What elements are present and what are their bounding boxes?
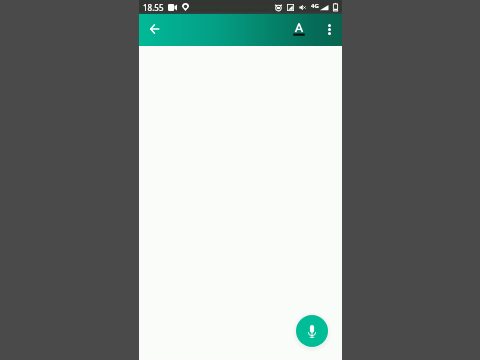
button[interactable]: Back — [139, 14, 169, 46]
button[interactable]: More options — [314, 14, 342, 46]
staticText: 4G — [311, 2, 319, 10]
button[interactable]: Text color — [283, 14, 314, 46]
staticText: 18.55 — [143, 2, 164, 13]
button[interactable]: Record voice note — [296, 315, 328, 347]
